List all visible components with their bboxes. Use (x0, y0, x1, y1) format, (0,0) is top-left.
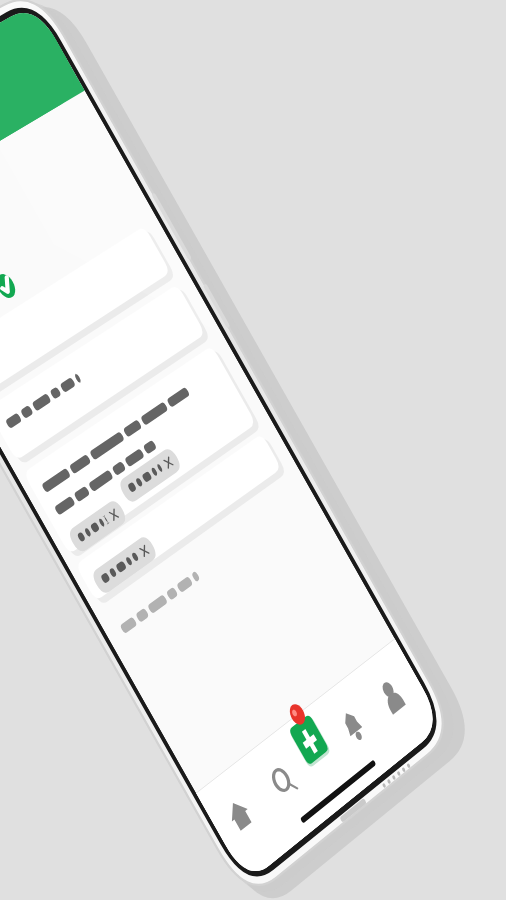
button[interactable]: Profile (214, 720, 270, 780)
button[interactable]: Notifications (158, 720, 214, 780)
button[interactable]: App preview on phone (0, 0, 506, 900)
button[interactable]: Add (102, 720, 158, 780)
